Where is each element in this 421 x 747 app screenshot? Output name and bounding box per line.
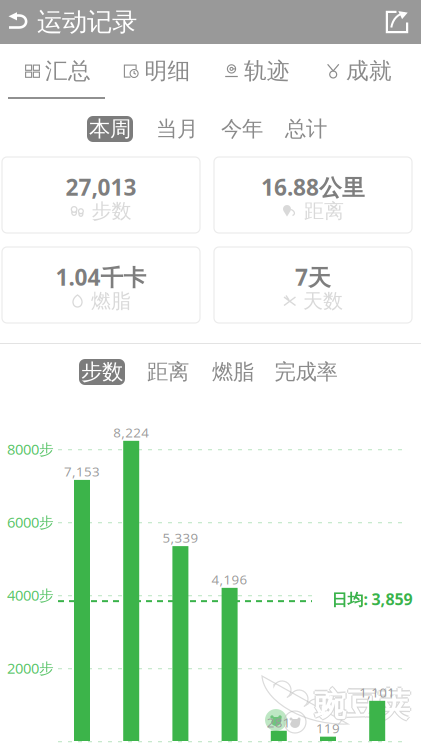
- staticText: 豌豆荚: [314, 684, 410, 723]
- button[interactable]: 燃脂: [210, 359, 256, 385]
- staticText: 今年: [221, 116, 263, 142]
- button[interactable]: 明细: [105, 44, 209, 100]
- staticText: 1.04千卡: [55, 262, 146, 292]
- staticText: 日均: 3,859: [331, 588, 412, 610]
- staticText: 7,153: [64, 463, 100, 480]
- button[interactable]: 27,013: [2, 157, 200, 233]
- staticText: 7天: [295, 262, 331, 292]
- staticText: 距离: [147, 359, 189, 385]
- staticText: 豌豆荚: [313, 685, 409, 725]
- staticText: 豌豆荚: [315, 685, 411, 725]
- staticText: 1,101: [359, 683, 395, 701]
- staticText: 明细: [144, 57, 190, 85]
- button[interactable]: 1.04千卡: [2, 247, 200, 323]
- staticText: 5,339: [162, 529, 198, 546]
- staticText: 燃脂: [212, 359, 254, 385]
- staticText: 豌豆荚: [314, 687, 410, 726]
- staticText: 成就: [346, 57, 392, 85]
- button[interactable]: 运动记录: [0, 0, 160, 44]
- staticText: 119: [316, 719, 340, 737]
- staticText: 豌豆荚: [314, 685, 410, 725]
- staticText: 6000步: [7, 512, 54, 532]
- staticText: 27,013: [65, 172, 136, 202]
- staticText: 4000步: [7, 585, 54, 605]
- staticText: 16.88公里: [261, 172, 365, 202]
- staticText: 总计: [285, 116, 327, 142]
- button[interactable]: 汇总: [6, 44, 110, 100]
- staticText: 距离: [304, 199, 344, 223]
- staticText: 天数: [303, 289, 343, 313]
- button[interactable]: 本周: [87, 116, 133, 142]
- button[interactable]: 16.88公里: [214, 157, 412, 233]
- staticText: 2000步: [7, 658, 54, 678]
- staticText: 当月: [156, 116, 198, 142]
- staticText: 步数: [91, 199, 131, 223]
- button[interactable]: 完成率: [267, 359, 345, 385]
- staticText: 本周: [89, 116, 131, 142]
- staticText: 8,224: [113, 423, 149, 441]
- button[interactable]: 成就: [307, 44, 411, 100]
- button[interactable]: 7天: [214, 247, 412, 323]
- staticText: 4,196: [212, 570, 248, 588]
- staticText: 轨迹: [244, 57, 290, 85]
- button[interactable]: 距离: [145, 359, 191, 385]
- staticText: 完成率: [274, 359, 337, 385]
- staticText: 步数: [81, 359, 123, 385]
- staticText: 燃脂: [91, 289, 131, 313]
- button[interactable]: 当月: [154, 116, 200, 142]
- button[interactable]: 今年: [219, 116, 265, 142]
- staticText: 281: [267, 713, 291, 731]
- button[interactable]: 步数: [79, 359, 125, 385]
- staticText: 汇总: [45, 57, 91, 85]
- staticText: 运动记录: [37, 6, 137, 37]
- button[interactable]: 轨迹: [205, 44, 309, 100]
- button[interactable]: 总计: [283, 116, 329, 142]
- button[interactable]: 分享: [374, 0, 420, 44]
- staticText: 8000步: [7, 439, 54, 459]
